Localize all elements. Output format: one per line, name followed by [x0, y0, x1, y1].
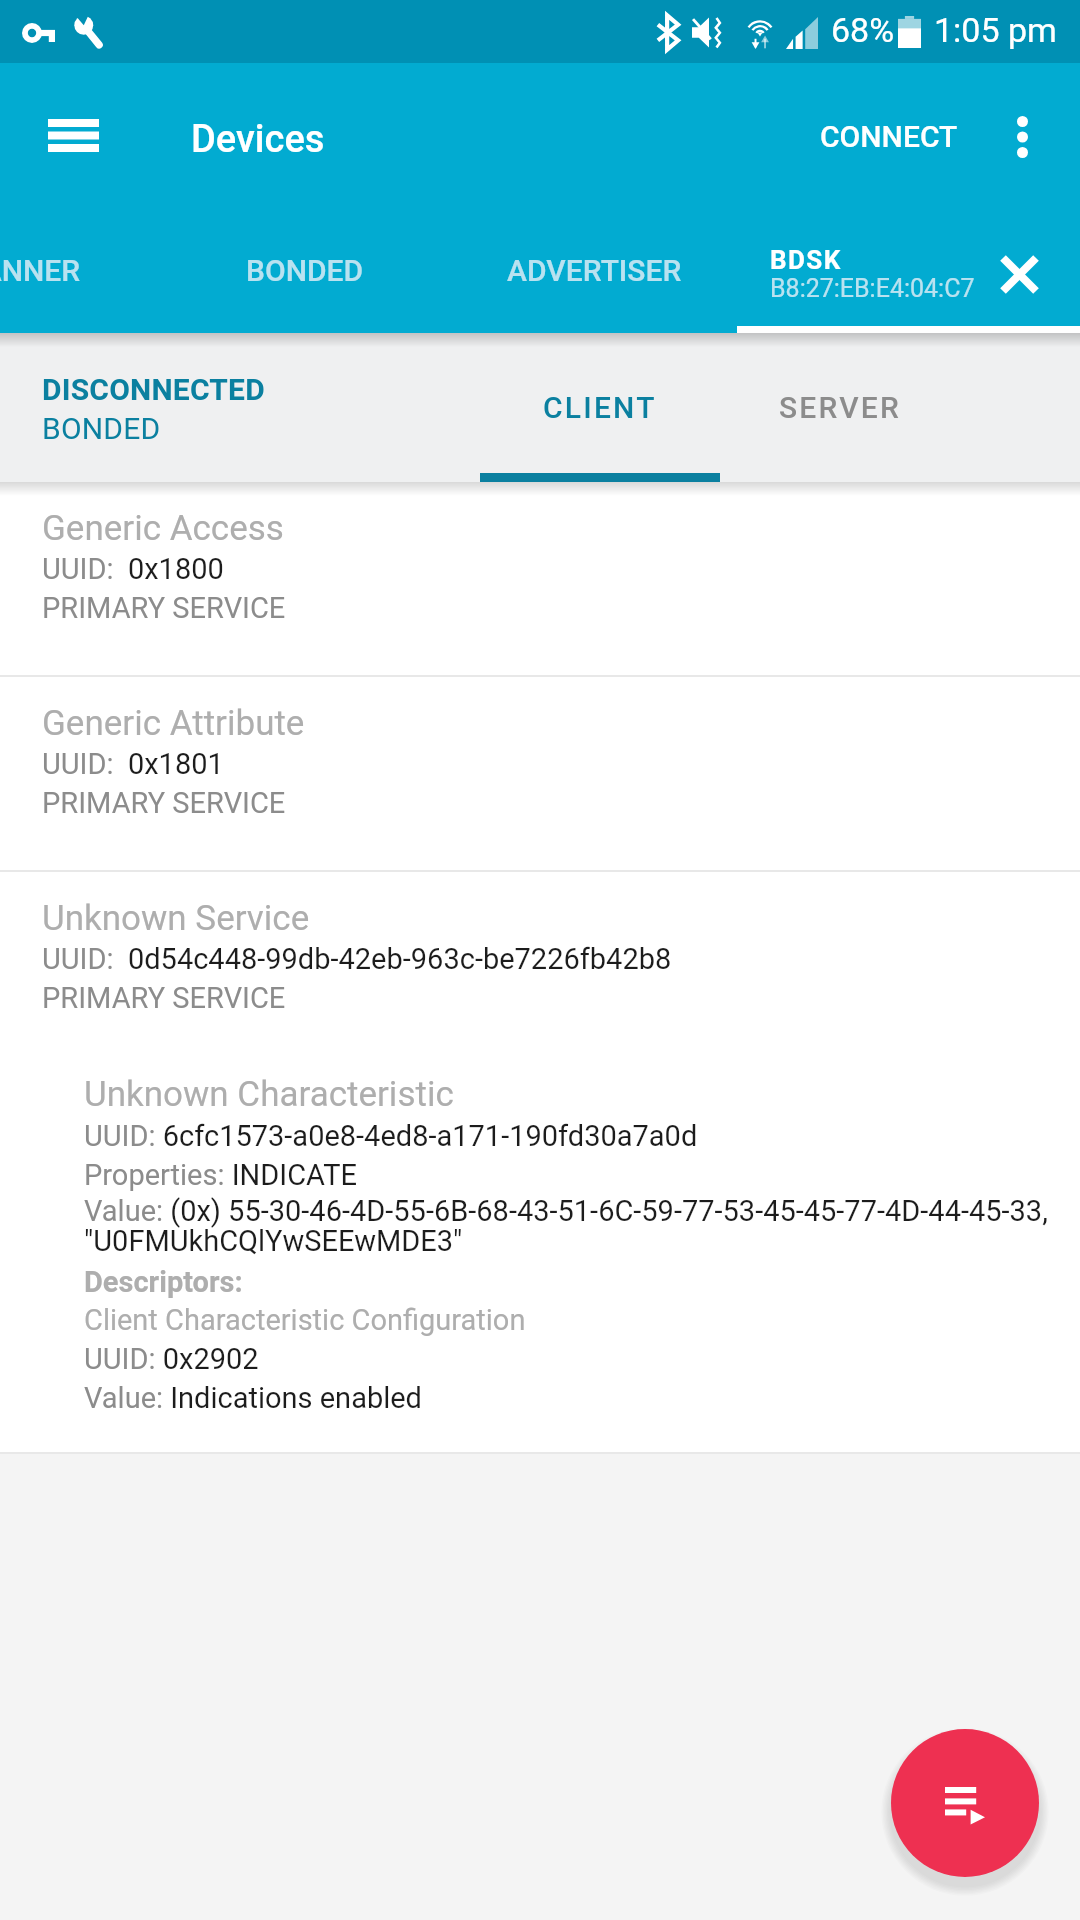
button[interactable]: SCANNER	[0, 221, 212, 333]
button[interactable]: More options	[974, 89, 1070, 185]
button[interactable]: Generic Access	[0, 482, 1080, 675]
staticText: UUID: 0x2902	[84, 1338, 259, 1377]
button[interactable]: Send message	[891, 1729, 1039, 1877]
staticText: CLIENT	[543, 390, 657, 425]
button[interactable]: CONNECT	[794, 95, 984, 178]
staticText: UUID: 0x1800	[42, 548, 224, 587]
staticText: Client Characteristic Configuration	[84, 1300, 526, 1338]
staticText: BDSK	[770, 246, 842, 275]
staticText: PRIMARY SERVICE	[42, 782, 286, 821]
button[interactable]: ADVERTISER	[394, 221, 794, 333]
staticText: DISCONNECTED	[42, 369, 265, 408]
staticText: 68%	[831, 10, 895, 50]
staticText: UUID: 0x1801	[42, 743, 224, 782]
staticText: ADVERTISER	[507, 253, 682, 288]
staticText: Properties: INDICATE	[84, 1154, 357, 1193]
staticText: SERVER	[779, 390, 901, 425]
staticText: Unknown Characteristic	[84, 1073, 454, 1115]
staticText: Value: (0x) 55-30-46-4D-55-6B-68-43-51-6…	[84, 1197, 1048, 1257]
button[interactable]: Unknown Service	[0, 872, 1080, 1016]
staticText: BONDED	[42, 408, 161, 447]
button[interactable]: CLIENT	[480, 333, 720, 482]
staticText: CONNECT	[820, 119, 958, 154]
staticText: UUID: 0d54c448-99db-42eb-963c-be7226fb42…	[42, 938, 672, 977]
staticText: 1:05 pm	[934, 10, 1057, 50]
staticText: Descriptors:	[84, 1261, 243, 1300]
button[interactable]: BDSK	[737, 221, 1080, 333]
button[interactable]: SERVER	[720, 333, 960, 482]
staticText: Generic Access	[42, 508, 284, 548]
button[interactable]: Unknown Characteristic	[0, 1016, 1080, 1452]
staticText: Devices	[191, 117, 325, 162]
staticText: Unknown Service	[42, 898, 310, 938]
staticText: PRIMARY SERVICE	[42, 587, 286, 626]
button[interactable]: Close tab	[982, 237, 1056, 311]
staticText: B8:27:EB:E4:04:C7	[770, 275, 975, 303]
staticText: SCANNER	[0, 253, 80, 288]
staticText: UUID: 6cfc1573-a0e8-4ed8-a171-190fd30a7a…	[84, 1115, 698, 1154]
staticText: Generic Attribute	[42, 703, 305, 743]
staticText: Value: Indications enabled	[84, 1377, 422, 1416]
button[interactable]: BONDED	[105, 221, 505, 333]
staticText: BONDED	[246, 253, 364, 288]
button[interactable]: Open navigation menu	[9, 71, 137, 199]
staticText: PRIMARY SERVICE	[42, 977, 286, 1016]
button[interactable]: Generic Attribute	[0, 677, 1080, 870]
